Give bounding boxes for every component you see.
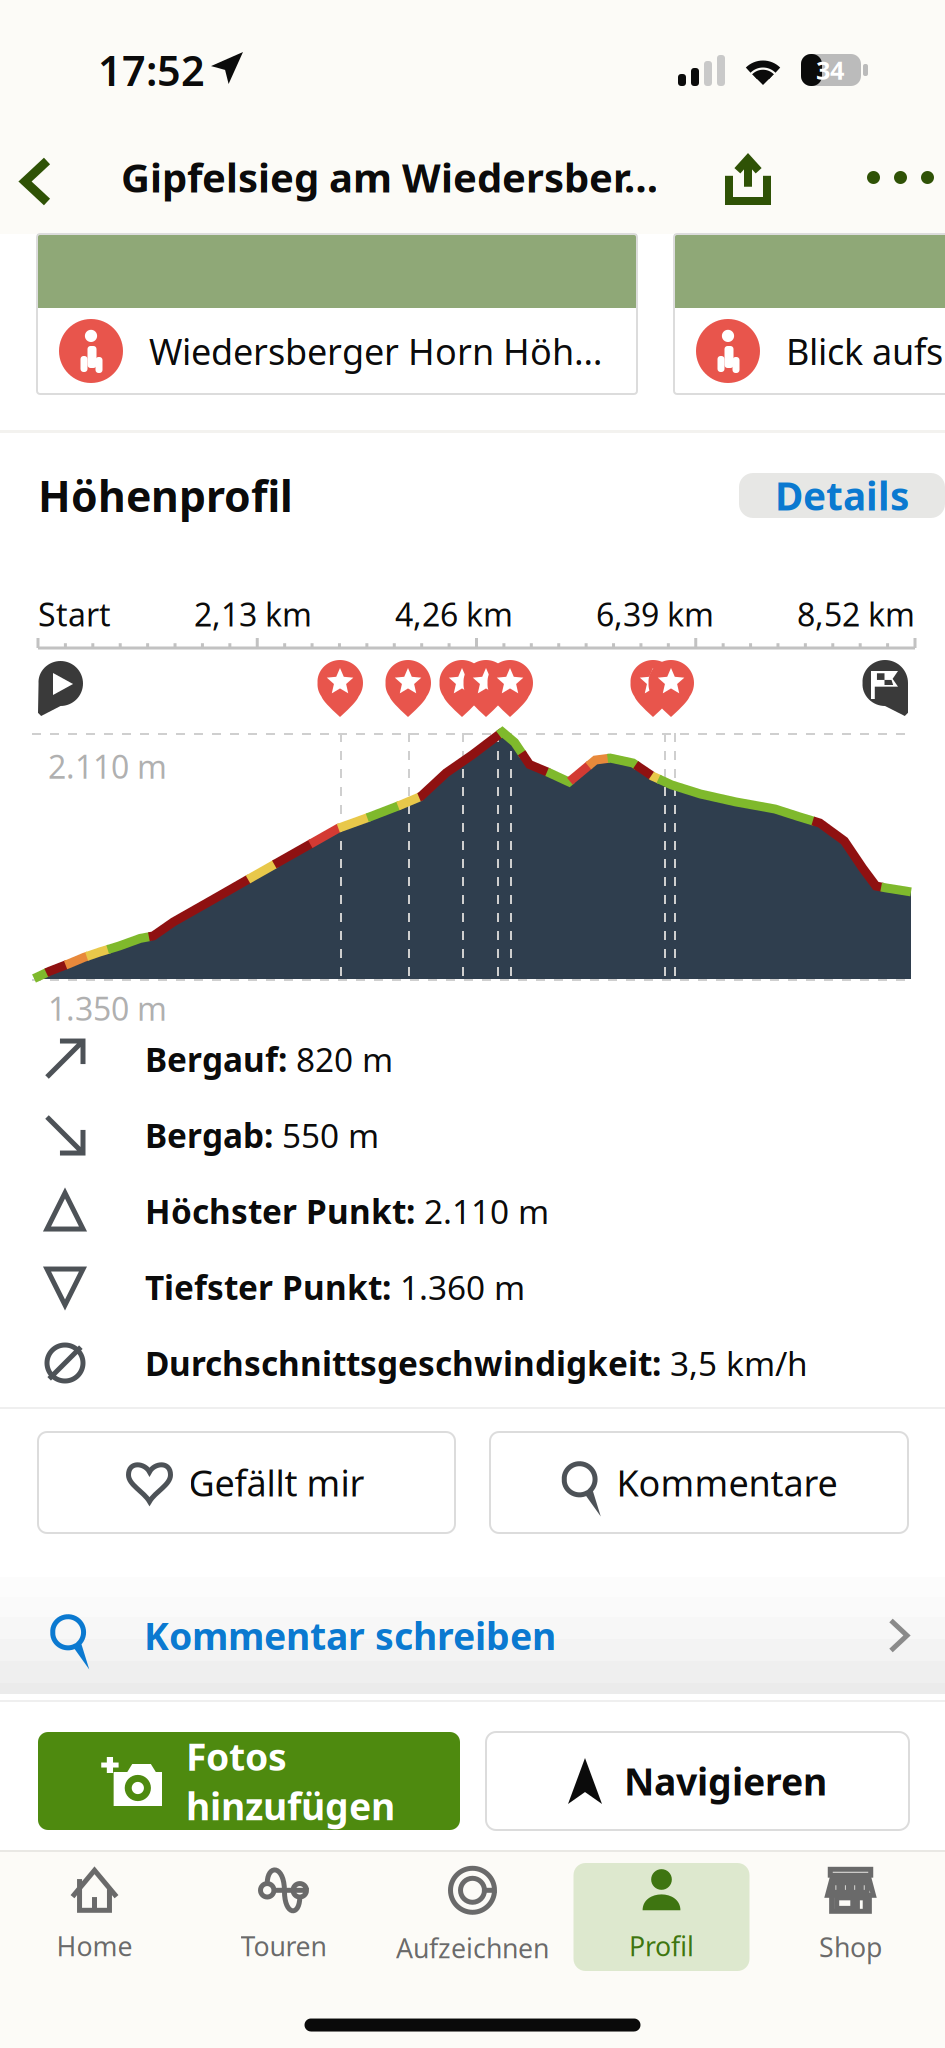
staticText: 34 (816, 53, 844, 87)
button[interactable]: Fotos hinzufügen (38, 1732, 460, 1830)
staticText: Navigieren (624, 1756, 827, 1806)
staticText: Gipfelsieg am Wiedersber… (121, 150, 658, 203)
staticText: Blick aufs (786, 327, 943, 375)
button[interactable]: Gefällt mir (38, 1432, 455, 1533)
staticText: Durchschnittsgeschwindigkeit: (145, 1341, 661, 1385)
button[interactable]: Shop (756, 1859, 945, 1975)
staticText: Fotos hinzufügen (186, 1731, 395, 1831)
staticText: Shop (819, 1929, 882, 1965)
button[interactable]: Navigieren (486, 1732, 909, 1830)
button[interactable]: Blick aufs (674, 234, 945, 394)
staticText: Bergab: (145, 1113, 273, 1157)
staticText: 8,52 km (797, 593, 915, 635)
staticText: 550 m (273, 1113, 379, 1157)
staticText: 3,5 km/h (661, 1341, 808, 1385)
staticText: 1.350 m (48, 987, 167, 1029)
button[interactable]: Profil (567, 1859, 756, 1975)
staticText: Höchster Punkt: (145, 1189, 415, 1233)
staticText: 820 m (287, 1037, 393, 1081)
button[interactable]: Touren (189, 1859, 378, 1975)
staticText: Bergauf: (145, 1037, 287, 1081)
staticText: 17:52 (98, 43, 205, 97)
staticText: Gefällt mir (188, 1459, 364, 1506)
staticText: 1.360 m (391, 1265, 525, 1309)
staticText: Home (56, 1928, 132, 1964)
button[interactable]: Kommentare (490, 1432, 908, 1533)
button[interactable]: Aufzeichnen (378, 1859, 567, 1975)
staticText: Aufzeichnen (396, 1930, 549, 1966)
staticText: 2,13 km (194, 593, 312, 635)
button[interactable]: Mehr (845, 128, 945, 234)
staticText: Details (775, 470, 909, 521)
staticText: 2.110 m (415, 1189, 549, 1233)
staticText: Profil (629, 1928, 694, 1964)
button[interactable]: Details (739, 473, 945, 518)
button[interactable]: Home (0, 1859, 189, 1975)
button[interactable]: Teilen (700, 128, 796, 234)
staticText: Kommentare (616, 1459, 837, 1506)
button[interactable]: Wiedersberger Horn Höh… (37, 234, 637, 394)
staticText: Wiedersberger Horn Höh… (149, 327, 602, 375)
staticText: 4,26 km (395, 593, 513, 635)
staticText: Tiefster Punkt: (145, 1265, 391, 1309)
staticText: Start (38, 593, 111, 635)
staticText: 2.110 m (48, 745, 167, 787)
staticText: Höhenprofil (38, 467, 293, 524)
staticText: Touren (240, 1928, 326, 1964)
staticText: Kommentar schreiben (144, 1611, 556, 1660)
button[interactable]: Zurück (0, 128, 80, 234)
button[interactable]: Kommentar schreiben (0, 1577, 945, 1694)
staticText: 6,39 km (596, 593, 714, 635)
